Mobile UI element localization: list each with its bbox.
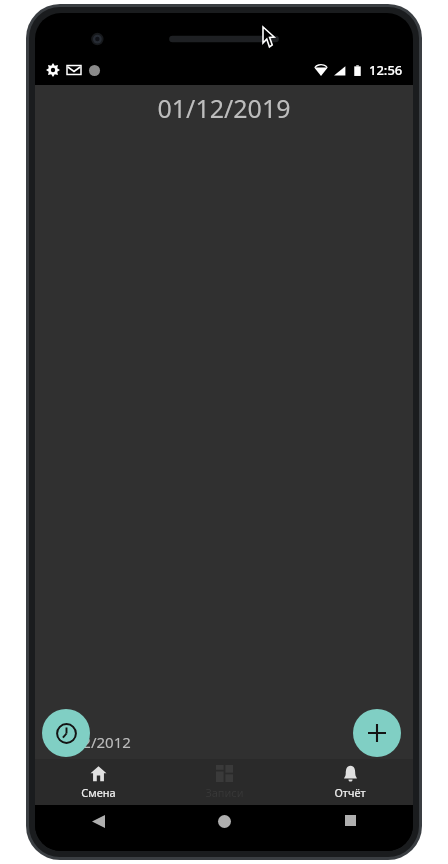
staticText: 01/12/2019 [157,91,291,125]
button[interactable]: Add [353,709,401,757]
button[interactable]: Записи [161,759,287,805]
staticText: 12:56 [369,61,403,79]
button[interactable]: Смена [35,759,161,805]
button[interactable]: Home [161,815,287,828]
button[interactable]: Start shift timer [42,709,90,757]
staticText: 01/12/2012 [51,732,131,752]
button[interactable]: Отчёт [287,759,413,805]
staticText: Отчёт [334,785,366,800]
staticText: Смена [51,715,86,730]
staticText: Смена [81,785,116,800]
button[interactable]: Recent apps [287,815,413,826]
staticText: Записи [205,785,244,800]
button[interactable]: Back [35,815,161,828]
